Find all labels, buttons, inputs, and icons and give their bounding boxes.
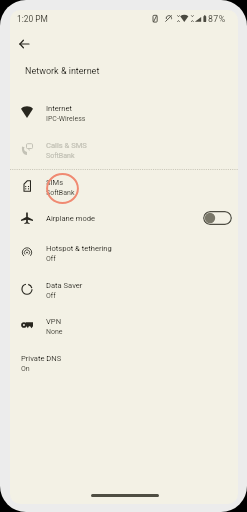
staticText: None [46, 328, 63, 336]
staticText: Network & internet [25, 66, 100, 77]
button[interactable]: Back [12, 32, 36, 56]
staticText: Airplane mode [46, 214, 96, 223]
button[interactable]: VPN [10, 313, 238, 343]
staticText: SoftBank [46, 152, 75, 160]
button[interactable]: Hotspot & tethering [10, 240, 238, 270]
staticText: SIMs [46, 178, 64, 187]
button[interactable]: SIMs [10, 174, 238, 204]
staticText: 1:20 PM [17, 14, 48, 24]
staticText: 87% [208, 14, 226, 24]
staticText: IPC-Wireless [46, 115, 86, 123]
staticText: Off [46, 255, 56, 263]
staticText: Hotspot & tethering [46, 244, 112, 253]
button[interactable]: Private DNS [10, 350, 238, 380]
staticText: VPN [46, 317, 62, 326]
button[interactable]: Data Saver [10, 277, 238, 307]
staticText: Off [46, 292, 56, 300]
staticText: Calls & SMS [46, 141, 87, 150]
staticText: Internet [46, 104, 73, 113]
button[interactable]: Internet [10, 100, 238, 130]
staticText: SoftBank [46, 189, 75, 197]
staticText: On [21, 365, 30, 373]
button[interactable]: Airplane mode toggle [203, 211, 232, 225]
button[interactable]: Airplane mode [10, 210, 238, 234]
staticText: Private DNS [21, 354, 62, 363]
staticText: Data Saver [46, 281, 83, 290]
button[interactable]: Calls & SMS [10, 137, 238, 167]
